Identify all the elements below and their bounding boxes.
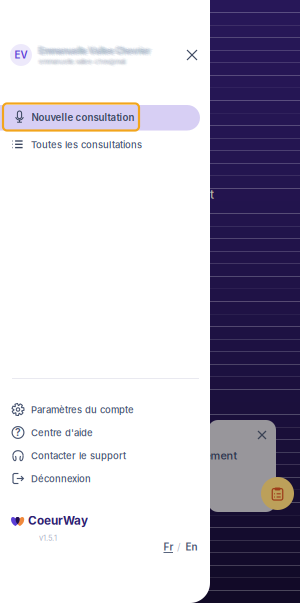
staticText: emmanuelle.vallee-chev@mail	[37, 58, 123, 65]
staticText: Paramètres du compte	[31, 404, 134, 416]
staticText: /	[177, 541, 181, 553]
staticText: emmanuelle.vallee-chev@mail	[39, 57, 125, 64]
staticText: v1.5.1	[39, 533, 57, 542]
staticText: emmanuelle.vallee-chev@mail	[39, 59, 125, 66]
staticText: Emmanuelle Vallee Chevrier	[40, 45, 151, 55]
staticText: Emmanuelle Vallee Chevrier	[37, 44, 148, 54]
staticText: Toutes les consultations	[31, 139, 142, 151]
staticText: Emmanuelle Vallee Chevrier	[39, 47, 150, 57]
staticText: emmanuelle.vallee-chev@mail	[40, 59, 126, 66]
button[interactable]: Nouvelle note	[261, 477, 294, 510]
staticText: Nouvelle consultation	[31, 112, 134, 123]
staticText: Emmanuelle Vallee Chevrier	[39, 45, 150, 55]
button[interactable]: Déconnexion	[0, 467, 198, 490]
staticText: emmanuelle.vallee-chev@mail	[40, 57, 126, 65]
staticText: ?	[15, 426, 21, 439]
button[interactable]: Contacter le support	[0, 444, 198, 467]
button[interactable]: Fermer le menu	[181, 44, 203, 66]
button[interactable]: Fr	[163, 542, 174, 553]
staticText: tement	[200, 449, 237, 462]
staticText: emmanuelle.vallee-chev@mail	[38, 57, 124, 65]
staticText: Emmanuelle Vallee Chevrier	[39, 46, 150, 56]
staticText: Emmanuelle Vallee Chevrier	[42, 46, 153, 56]
staticText: Emmanuelle Vallee Chevrier	[40, 46, 151, 56]
staticText: Emmanuelle Vallee Chevrier	[38, 47, 149, 57]
staticText: t	[210, 187, 214, 202]
button[interactable]: En	[185, 541, 197, 553]
staticText: Emmanuelle Vallee Chevrier	[41, 48, 152, 58]
staticText: Centre d'aide	[31, 427, 93, 439]
staticText: En	[185, 541, 197, 553]
button[interactable]: Paramètres du compte	[0, 398, 198, 421]
staticText: emmanuelle.vallee-chev@mail	[41, 58, 127, 65]
staticText: Emmanuelle Vallee Chevrier	[38, 45, 149, 55]
button[interactable]: Nouvelle consultation	[3, 103, 139, 130]
staticText: emmanuelle.vallee-chev@mail	[40, 59, 126, 67]
button[interactable]: ?	[0, 421, 198, 444]
staticText: Emmanuelle Vallee Chevrier	[40, 47, 151, 57]
staticText: Emmanuelle Vallee Chevrier	[38, 46, 149, 56]
staticText: Fr	[163, 541, 173, 553]
staticText: Emmanuelle Vallee Chevrier	[36, 46, 147, 56]
staticText: Déconnexion	[31, 473, 91, 485]
staticText: emmanuelle.vallee-chev@mail	[39, 58, 125, 65]
button[interactable]: Toutes les consultations	[0, 133, 198, 156]
button[interactable]: Fermer	[255, 428, 269, 442]
staticText: Contacter le support	[31, 450, 126, 462]
staticText: EV	[14, 49, 27, 61]
staticText: emmanuelle.vallee-chev@mail	[37, 56, 123, 64]
staticText: emmanuelle.vallee-chev@mail	[38, 59, 124, 66]
staticText: emmanuelle.vallee-chev@mail	[38, 58, 124, 65]
staticText: CoeurWay	[28, 513, 88, 528]
staticText: emmanuelle.vallee-chev@mail	[40, 58, 126, 65]
